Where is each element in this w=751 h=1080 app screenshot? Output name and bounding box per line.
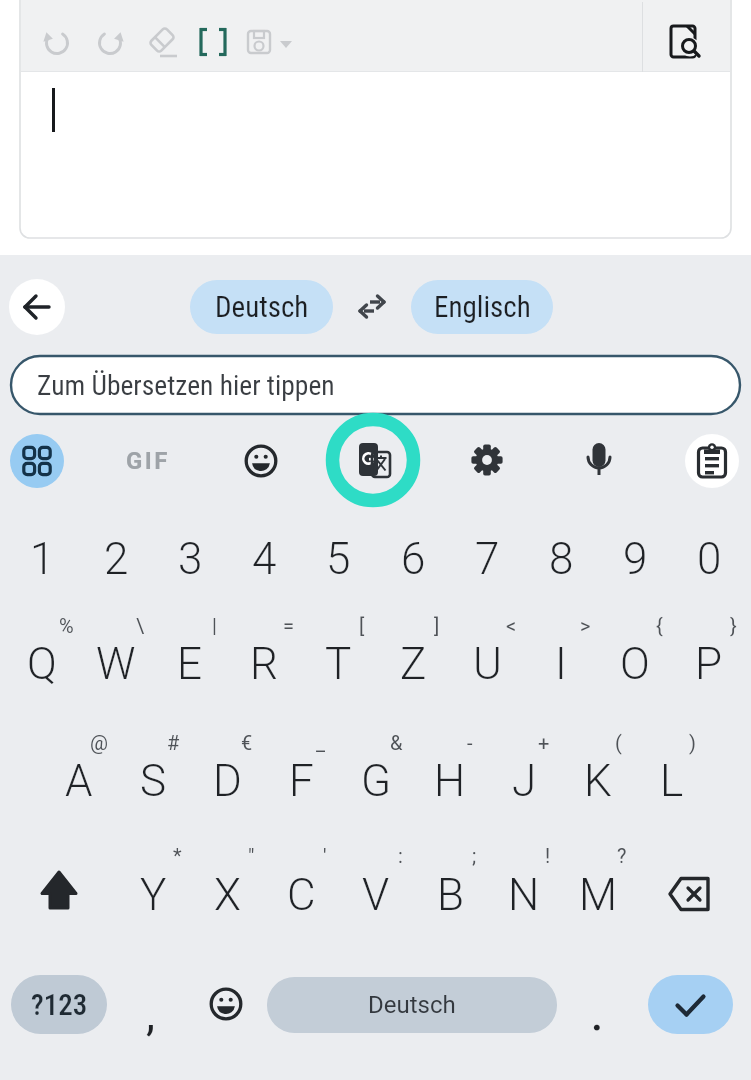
staticText: >: [580, 614, 591, 637]
staticText: 1: [30, 533, 55, 585]
button[interactable]: [10, 355, 741, 415]
staticText: [: [359, 614, 365, 637]
button[interactable]: [685, 434, 739, 488]
button[interactable]: Z: [376, 612, 450, 716]
button[interactable]: V: [339, 843, 413, 947]
staticText: GIF: [126, 447, 171, 475]
button[interactable]: [350, 284, 394, 328]
button[interactable]: T: [301, 612, 375, 716]
button[interactable]: W: [79, 612, 153, 716]
staticText: .: [590, 980, 605, 1043]
staticText: X: [214, 869, 241, 921]
staticText: Deutsch: [368, 991, 456, 1019]
button[interactable]: 6: [376, 509, 450, 609]
button[interactable]: [198, 976, 254, 1032]
button[interactable]: S: [116, 729, 190, 833]
button[interactable]: O: [598, 612, 672, 716]
button[interactable]: ?123: [11, 975, 107, 1034]
button[interactable]: 8: [524, 509, 598, 609]
button[interactable]: [9, 279, 65, 335]
staticText: ]: [434, 614, 440, 637]
button[interactable]: Deutsch: [267, 977, 557, 1033]
button[interactable]: C: [264, 843, 338, 947]
button[interactable]: 2: [79, 509, 153, 609]
staticText: 3: [178, 533, 203, 585]
button[interactable]: B: [413, 843, 487, 947]
button[interactable]: Deutsch: [190, 280, 333, 334]
staticText: I: [555, 638, 567, 690]
staticText: G: [361, 755, 392, 807]
staticText: 9: [623, 533, 648, 585]
button[interactable]: 7: [450, 509, 524, 609]
button[interactable]: [140, 20, 184, 64]
staticText: Q: [27, 638, 57, 690]
staticText: 7: [475, 533, 500, 585]
button[interactable]: .: [567, 971, 627, 1051]
staticText: M: [579, 869, 618, 921]
button[interactable]: H: [413, 729, 487, 833]
button[interactable]: K: [561, 729, 635, 833]
button[interactable]: 9: [598, 509, 672, 609]
staticText: R: [250, 638, 278, 690]
staticText: %: [59, 614, 74, 637]
staticText: {: [656, 614, 663, 637]
staticText: Englisch: [434, 290, 531, 324]
staticText: 5: [326, 533, 351, 585]
button[interactable]: J: [487, 729, 561, 833]
button[interactable]: [19, 846, 99, 936]
button[interactable]: [651, 849, 731, 939]
staticText: Zum Übersetzen hier tippen: [37, 369, 335, 401]
staticText: -: [467, 731, 473, 754]
staticText: V: [362, 869, 390, 921]
button[interactable]: 5: [301, 509, 375, 609]
staticText: 4: [252, 533, 277, 585]
button[interactable]: F: [264, 729, 338, 833]
staticText: H: [434, 755, 466, 807]
button[interactable]: R: [227, 612, 301, 716]
staticText: O: [620, 638, 650, 690]
button[interactable]: GIF: [108, 436, 188, 486]
button[interactable]: 0: [672, 509, 746, 609]
staticText: 8: [549, 533, 574, 585]
button[interactable]: [35, 20, 79, 64]
button[interactable]: E: [153, 612, 227, 716]
button[interactable]: G: [339, 729, 413, 833]
button[interactable]: Q: [5, 612, 79, 716]
button[interactable]: [88, 20, 132, 64]
button[interactable]: N: [487, 843, 561, 947]
button[interactable]: 1: [5, 509, 79, 609]
button[interactable]: I: [524, 612, 598, 716]
button[interactable]: [277, 35, 295, 53]
staticText: <: [506, 614, 517, 637]
staticText: ?: [617, 844, 627, 867]
staticText: A: [65, 755, 93, 807]
button[interactable]: [572, 432, 626, 486]
staticText: 2: [104, 533, 129, 585]
button[interactable]: M: [561, 843, 635, 947]
button[interactable]: [10, 434, 64, 488]
button[interactable]: [657, 14, 713, 70]
staticText: €: [241, 731, 253, 754]
button[interactable]: A: [42, 729, 116, 833]
button[interactable]: [237, 20, 281, 64]
button[interactable]: Y: [116, 843, 190, 947]
button[interactable]: [325, 412, 421, 508]
button[interactable]: L: [635, 729, 709, 833]
button[interactable]: [648, 975, 733, 1034]
button[interactable]: X: [190, 843, 264, 947]
button[interactable]: D: [190, 729, 264, 833]
button[interactable]: ,: [121, 974, 181, 1054]
staticText: Deutsch: [215, 290, 309, 324]
button[interactable]: U: [450, 612, 524, 716]
button[interactable]: [460, 433, 514, 487]
staticText: T: [325, 638, 352, 690]
staticText: _: [316, 731, 326, 754]
button[interactable]: [234, 434, 288, 488]
button[interactable]: 3: [153, 509, 227, 609]
button[interactable]: Englisch: [411, 280, 553, 334]
staticText: 6: [401, 533, 426, 585]
button[interactable]: [191, 20, 235, 64]
button[interactable]: P: [672, 612, 746, 716]
staticText: S: [140, 755, 167, 807]
button[interactable]: 4: [227, 509, 301, 609]
